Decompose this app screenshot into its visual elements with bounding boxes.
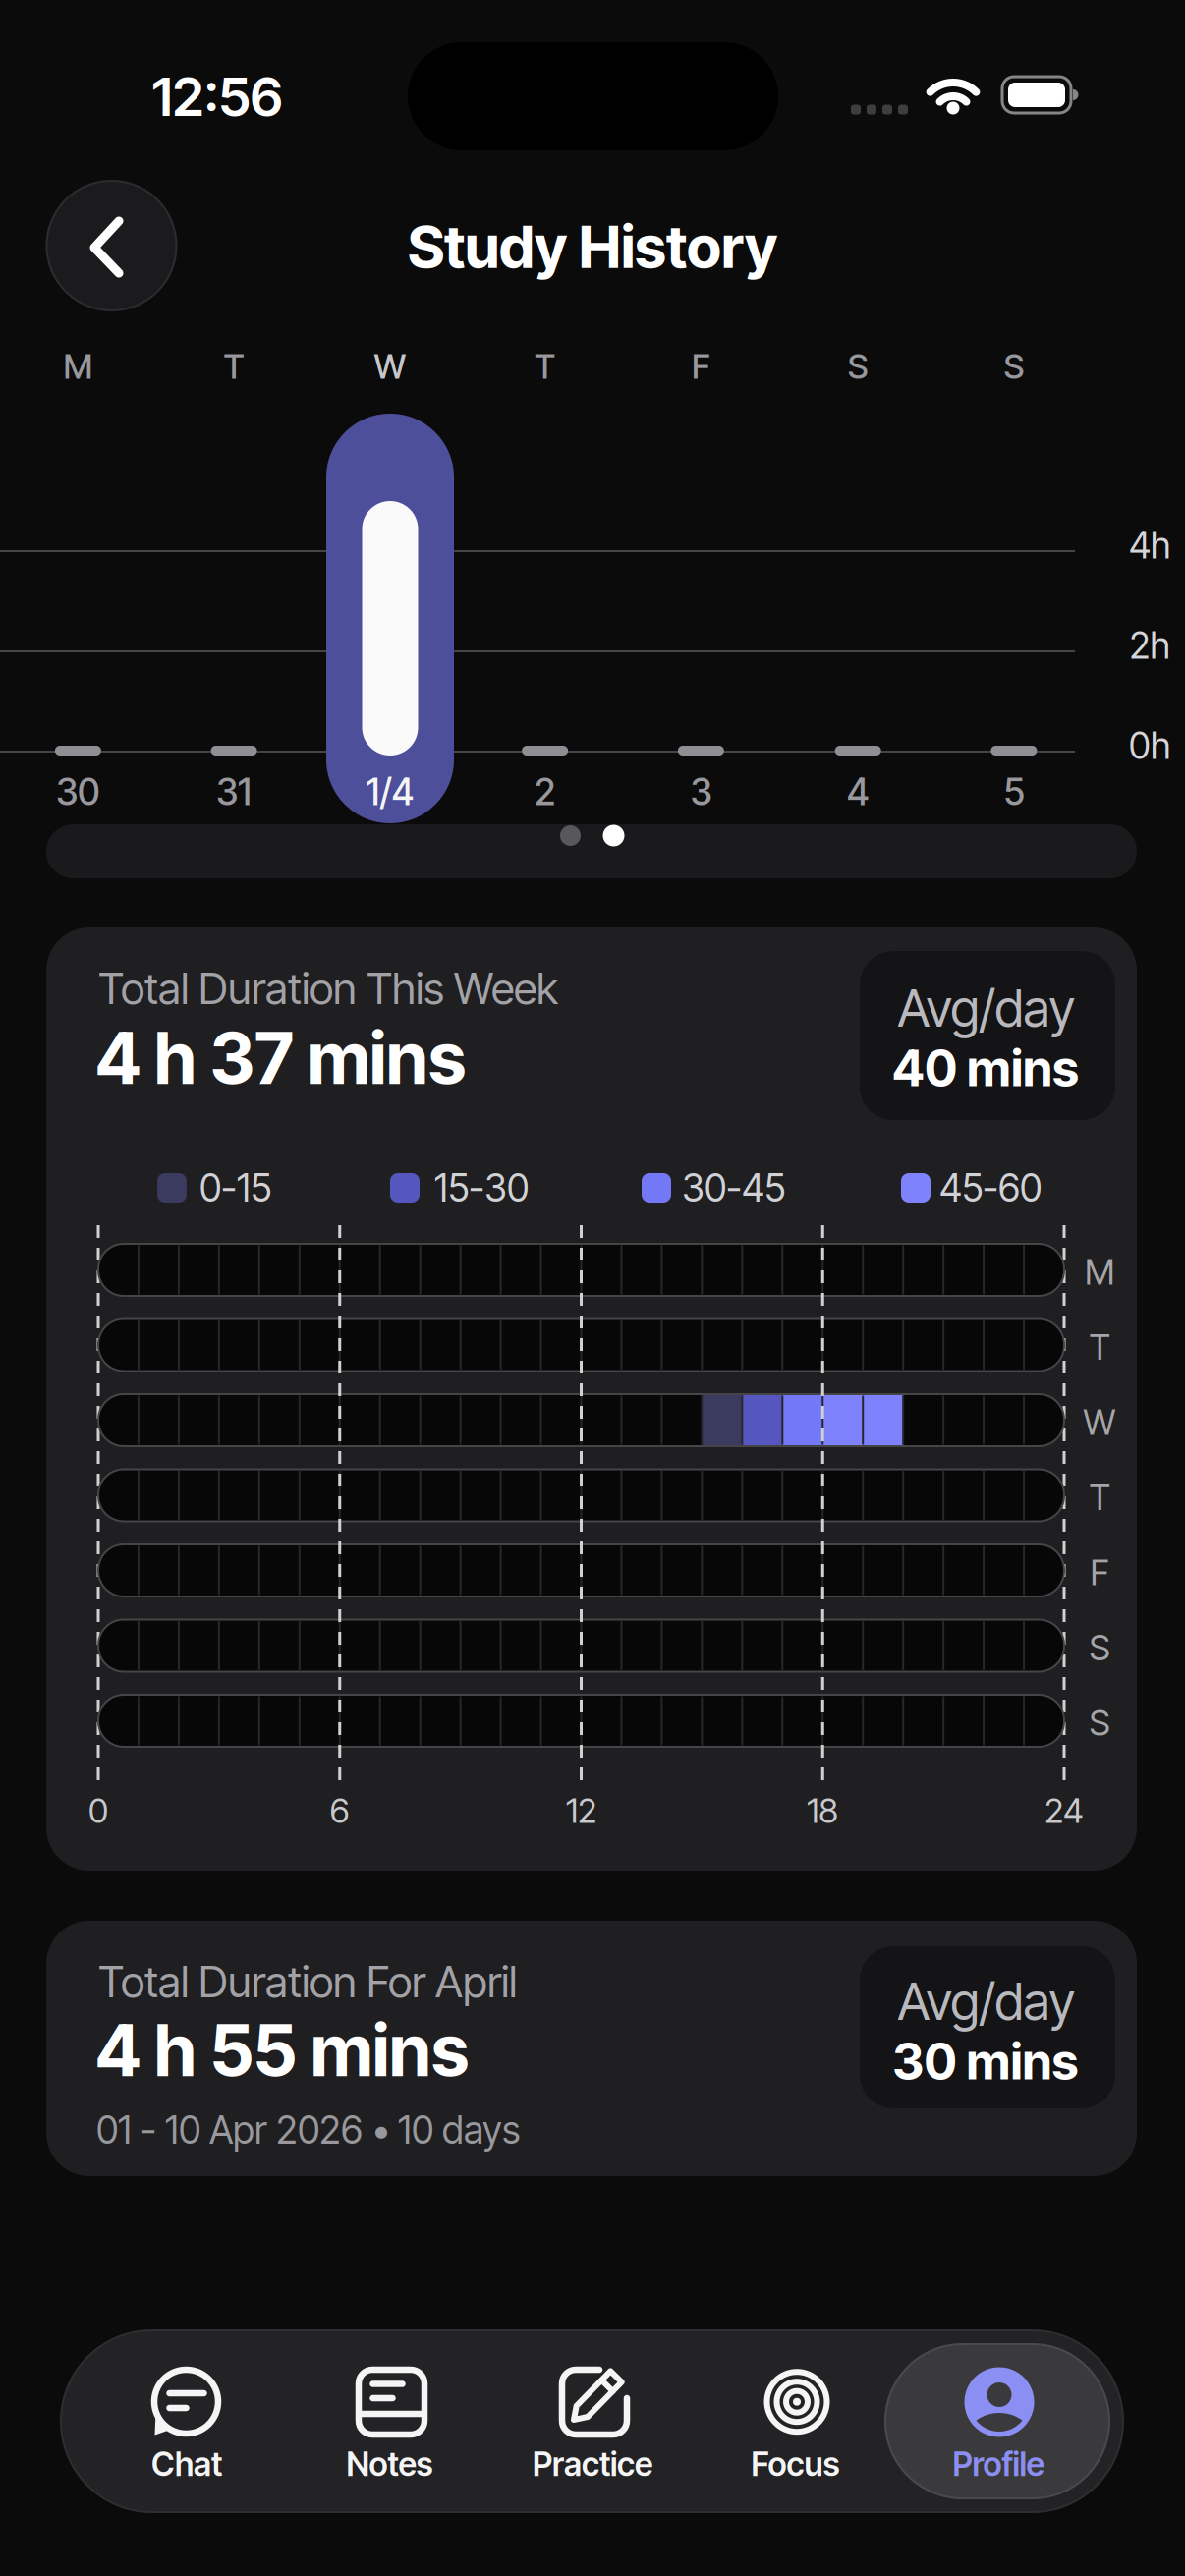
staticText: 30 (56, 770, 100, 814)
button[interactable]: 3 (637, 413, 765, 823)
staticText: Profile (953, 2444, 1044, 2484)
button[interactable]: 5 (950, 413, 1078, 823)
button[interactable]: Focus (697, 2340, 894, 2502)
staticText: 0 (88, 1790, 108, 1831)
staticText: 0-15 (199, 1165, 271, 1211)
staticText: Focus (751, 2444, 840, 2484)
staticText: Study History (408, 211, 777, 282)
staticText: T (224, 346, 244, 387)
button[interactable]: 30 (14, 413, 142, 823)
button[interactable]: 2 (481, 413, 609, 823)
staticText: S (848, 346, 868, 387)
staticText: Chat (151, 2444, 222, 2484)
staticText: 30-45 (682, 1165, 785, 1211)
button[interactable]: 31 (170, 413, 298, 823)
button[interactable]: Chat (88, 2340, 285, 2502)
staticText: S (1004, 346, 1024, 387)
staticText: M (1085, 1250, 1114, 1293)
staticText: 30 mins (893, 2031, 1078, 2091)
button[interactable]: Profile (900, 2340, 1097, 2502)
staticText: W (374, 346, 406, 387)
staticText: W (1083, 1401, 1116, 1444)
staticText: T (535, 346, 555, 387)
staticText: 4 h 55 mins (95, 2008, 469, 2093)
staticText: Notes (346, 2444, 433, 2484)
staticText: 01 - 10 Apr 2026 • 10 days (96, 2107, 520, 2153)
button[interactable]: 1/4 (326, 413, 454, 823)
button[interactable]: Back (47, 181, 176, 310)
staticText: T (1089, 1476, 1110, 1519)
staticText: 6 (330, 1790, 350, 1831)
staticText: 24 (1044, 1790, 1084, 1831)
staticText: 5 (1004, 770, 1024, 814)
staticText: T (1089, 1326, 1110, 1368)
staticText: 45-60 (939, 1165, 1042, 1211)
staticText: 3 (690, 770, 712, 814)
staticText: Total Duration For April (98, 1955, 517, 2008)
staticText: S (1089, 1701, 1110, 1744)
staticText: 15-30 (434, 1165, 529, 1211)
staticText: 31 (216, 770, 252, 814)
staticText: 18 (807, 1790, 838, 1831)
staticText: 4 (847, 770, 869, 814)
staticText: 2h (1129, 623, 1170, 668)
staticText: 4 h 37 mins (95, 1015, 466, 1101)
staticText: Total Duration This Week (98, 962, 558, 1014)
staticText: Avg/day (898, 977, 1075, 1039)
staticText: 4h (1129, 523, 1170, 567)
staticText: F (1090, 1551, 1109, 1594)
staticText: 0h (1129, 723, 1170, 768)
staticText: 40 mins (892, 1038, 1079, 1098)
button[interactable]: Practice (494, 2340, 691, 2502)
staticText: 12:56 (152, 64, 282, 129)
staticText: M (63, 346, 93, 387)
staticText: Practice (533, 2444, 652, 2484)
staticText: 12 (566, 1790, 596, 1831)
button[interactable]: Notes (291, 2340, 488, 2502)
staticText: 1/4 (366, 770, 414, 814)
staticText: F (692, 346, 710, 387)
staticText: S (1089, 1626, 1110, 1669)
staticText: 2 (535, 770, 555, 814)
staticText: Avg/day (898, 1970, 1075, 2032)
button[interactable]: 4 (794, 413, 922, 823)
